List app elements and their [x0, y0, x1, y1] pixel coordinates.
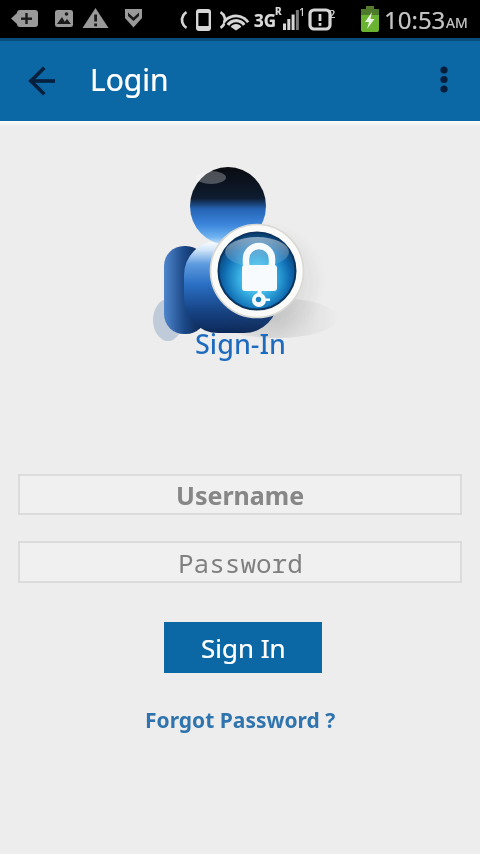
button[interactable]: Password [18, 541, 462, 583]
staticText: Password [178, 545, 303, 580]
staticText: 1 [299, 4, 306, 19]
staticText: 2 [329, 6, 336, 21]
staticText: Forgot Password ? [145, 706, 336, 735]
staticText: Username [176, 478, 305, 512]
staticText: AM [446, 13, 468, 32]
button[interactable]: Username [18, 474, 462, 515]
button[interactable] [420, 59, 468, 107]
staticText: 10:53 [384, 3, 446, 36]
button[interactable] [18, 56, 68, 106]
button[interactable]: Forgot Password ? [145, 706, 336, 735]
staticText: Sign-In [195, 325, 286, 362]
staticText: R [275, 4, 282, 18]
button[interactable]: Sign In [164, 622, 322, 673]
staticText: 3G [254, 9, 277, 32]
staticText: Login [90, 59, 169, 100]
staticText: Sign In [201, 630, 286, 665]
